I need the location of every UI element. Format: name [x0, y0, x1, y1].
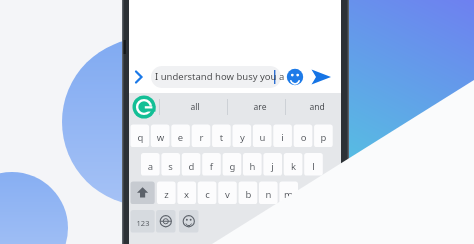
staticText: r	[192, 131, 211, 145]
staticText: 123	[131, 218, 155, 230]
staticText: j	[263, 160, 282, 174]
button[interactable]: Emoji	[287, 69, 309, 91]
staticText: all	[175, 101, 215, 115]
staticText: w	[151, 131, 170, 145]
staticText: k	[284, 160, 303, 174]
button[interactable]	[302, 95, 342, 123]
staticText: x	[177, 188, 196, 202]
staticText: e	[171, 131, 190, 145]
staticText: b	[239, 188, 258, 202]
button[interactable]: Send	[313, 68, 341, 92]
staticText: n	[259, 188, 278, 202]
staticText: y	[233, 131, 252, 145]
staticText: o	[294, 131, 313, 145]
button[interactable]	[238, 95, 300, 123]
staticText: m	[279, 188, 298, 202]
staticText: h	[243, 160, 262, 174]
staticText: d	[182, 160, 201, 174]
button[interactable]: Grammarly	[129, 95, 161, 123]
staticText: i	[273, 131, 292, 145]
staticText: l	[304, 160, 323, 174]
staticText: t	[212, 131, 231, 145]
staticText: a	[141, 160, 160, 174]
staticText: g	[223, 160, 242, 174]
staticText: u	[253, 131, 272, 145]
staticText: are	[240, 101, 280, 115]
staticText: q	[131, 131, 150, 145]
staticText: z	[157, 188, 176, 202]
button[interactable]	[165, 95, 235, 123]
staticText: and	[297, 101, 337, 115]
staticText: f	[202, 160, 221, 174]
staticText: I understand how busy you a	[155, 70, 285, 83]
button[interactable]: Expand actions	[126, 68, 140, 92]
staticText: c	[198, 188, 217, 202]
staticText: p	[314, 131, 333, 145]
staticText: v	[218, 188, 237, 202]
staticText: s	[161, 160, 180, 174]
